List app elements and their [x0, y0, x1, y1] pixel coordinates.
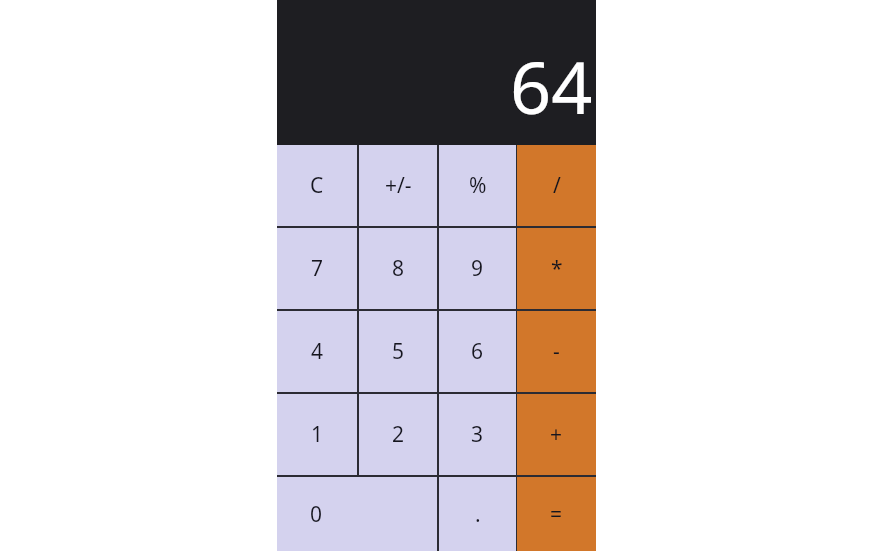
button[interactable]: 0	[277, 477, 437, 551]
staticText: 4	[311, 337, 324, 366]
staticText: 9	[471, 254, 484, 283]
button[interactable]: +	[517, 394, 596, 475]
button[interactable]: %	[439, 145, 516, 226]
staticText: =	[550, 500, 563, 529]
staticText: 6	[471, 337, 484, 366]
staticText: +	[550, 420, 563, 449]
button[interactable]: +/-	[359, 145, 437, 226]
staticText: C	[310, 171, 324, 200]
button[interactable]: 4	[277, 311, 357, 392]
staticText: %	[469, 171, 487, 200]
button[interactable]: 5	[359, 311, 437, 392]
staticText: 64	[510, 37, 593, 135]
button[interactable]: 8	[359, 228, 437, 309]
staticText: -	[553, 337, 560, 366]
staticText: 7	[311, 254, 324, 283]
button[interactable]: 3	[439, 394, 516, 475]
button[interactable]: .	[439, 477, 516, 551]
staticText: 5	[392, 337, 405, 366]
staticText: 8	[392, 254, 405, 283]
staticText: +/-	[385, 171, 412, 200]
button[interactable]: -	[517, 311, 596, 392]
staticText: 1	[311, 420, 324, 449]
staticText: 0	[310, 500, 323, 529]
staticText: .	[475, 500, 481, 529]
button[interactable]: /	[517, 145, 596, 226]
button[interactable]: 1	[277, 394, 357, 475]
staticText: 2	[392, 420, 405, 449]
button[interactable]: =	[517, 477, 596, 551]
staticText: /	[553, 171, 561, 200]
button[interactable]: *	[517, 228, 596, 309]
button[interactable]: 2	[359, 394, 437, 475]
button[interactable]: C	[277, 145, 357, 226]
button[interactable]: 6	[439, 311, 516, 392]
staticText: 3	[471, 420, 484, 449]
staticText: *	[551, 254, 563, 283]
button[interactable]: 7	[277, 228, 357, 309]
button[interactable]: 9	[439, 228, 516, 309]
